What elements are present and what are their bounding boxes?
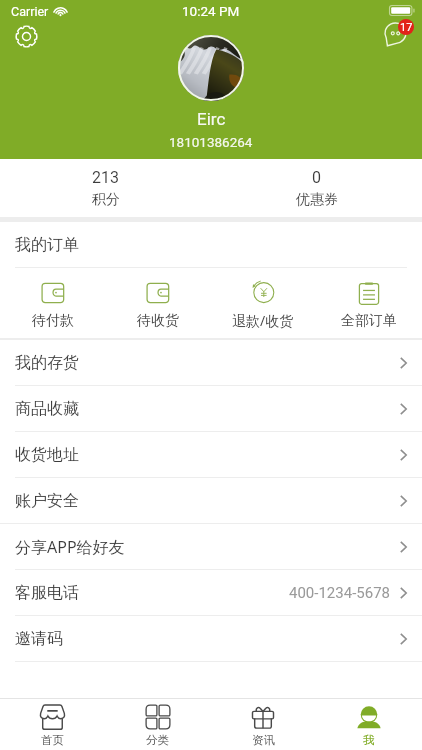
staticText: 积分 bbox=[92, 191, 120, 209]
staticText: Eirc bbox=[197, 109, 226, 129]
button[interactable]: Messages bbox=[376, 16, 416, 56]
button[interactable]: 0 bbox=[211, 159, 422, 217]
staticText: 收货地址 bbox=[15, 445, 79, 465]
staticText: 我的存货 bbox=[15, 353, 79, 373]
button[interactable]: 我 bbox=[316, 699, 422, 750]
staticText: 我的订单 bbox=[15, 235, 79, 255]
button[interactable]: 邀请码 bbox=[0, 616, 422, 661]
staticText: 17 bbox=[400, 21, 413, 34]
button[interactable]: 待收货 bbox=[105, 268, 210, 338]
button[interactable]: 分类 bbox=[105, 699, 210, 750]
staticText: 400-1234-5678 bbox=[289, 584, 391, 602]
staticText: 分类 bbox=[146, 733, 169, 747]
staticText: 10:24 PM bbox=[182, 3, 240, 19]
staticText: 分享APP给好友 bbox=[15, 536, 125, 558]
button[interactable] bbox=[178, 35, 244, 101]
staticText: 待付款 bbox=[32, 312, 74, 330]
staticText: 待收货 bbox=[137, 312, 179, 330]
staticText: 退款/收货 bbox=[232, 311, 294, 330]
staticText: Carrier bbox=[11, 4, 49, 19]
button[interactable]: 全部订单 bbox=[316, 268, 422, 338]
staticText: 资讯 bbox=[252, 733, 275, 747]
button[interactable]: 商品收藏 bbox=[0, 386, 422, 431]
button[interactable]: 退款/收货 bbox=[210, 268, 316, 338]
button[interactable]: 资讯 bbox=[210, 699, 316, 750]
button[interactable]: 213 bbox=[0, 159, 211, 217]
staticText: 首页 bbox=[41, 733, 64, 747]
staticText: 邀请码 bbox=[15, 629, 63, 649]
button[interactable]: 待付款 bbox=[0, 268, 105, 338]
staticText: 客服电话 bbox=[15, 583, 79, 603]
staticText: 0 bbox=[312, 168, 321, 187]
button[interactable]: 首页 bbox=[0, 699, 105, 750]
staticText: 商品收藏 bbox=[15, 399, 79, 419]
button[interactable]: 我的存货 bbox=[0, 340, 422, 385]
staticText: 账户安全 bbox=[15, 491, 79, 511]
button[interactable]: 账户安全 bbox=[0, 478, 422, 523]
staticText: 优惠券 bbox=[296, 191, 338, 209]
staticText: 18101386264 bbox=[169, 134, 253, 150]
staticText: 213 bbox=[92, 168, 119, 187]
staticText: 我 bbox=[363, 733, 375, 747]
button[interactable]: Settings bbox=[6, 16, 46, 56]
button[interactable]: 分享APP给好友 bbox=[0, 524, 422, 569]
button[interactable]: 客服电话 bbox=[0, 570, 422, 615]
staticText: 全部订单 bbox=[341, 312, 397, 330]
button[interactable]: 收货地址 bbox=[0, 432, 422, 477]
